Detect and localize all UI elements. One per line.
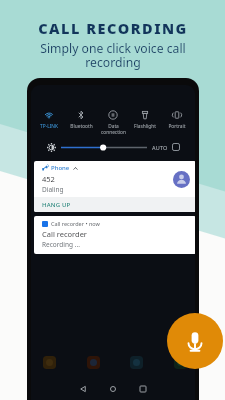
button[interactable]: Flashlight <box>129 110 161 130</box>
button[interactable]: Bluetooth <box>65 110 97 130</box>
button[interactable]: Call recorder • now <box>34 216 195 254</box>
staticText: Dialing <box>42 185 64 194</box>
staticText: Recording ... <box>42 240 80 249</box>
staticText: AUTO <box>152 144 168 151</box>
button[interactable]: Portrait <box>161 110 193 130</box>
button[interactable]: App <box>87 356 100 369</box>
button[interactable]: Phone <box>34 161 195 212</box>
button[interactable]: App <box>130 356 143 369</box>
staticText: Call recorder • now <box>51 220 100 227</box>
staticText: TP-LINK <box>40 123 58 130</box>
staticText: Bluetooth <box>70 123 93 130</box>
button[interactable]: Auto brightness <box>172 143 180 151</box>
button[interactable]: Recents <box>135 381 151 397</box>
button[interactable]: HANG UP <box>34 197 195 212</box>
button[interactable]: Data connection <box>97 110 129 135</box>
button[interactable]: TP-LINK <box>33 110 65 130</box>
button[interactable]: App <box>43 356 56 369</box>
button[interactable]: Back <box>75 381 91 397</box>
staticText: Phone <box>51 164 70 172</box>
staticText: CALL RECORDING <box>38 18 188 38</box>
button[interactable]: Brightness <box>61 143 147 152</box>
staticText: Flashlight <box>134 123 156 130</box>
staticText: Portrait <box>168 123 186 130</box>
button[interactable]: Home <box>105 381 121 397</box>
staticText: 452 <box>42 174 55 184</box>
staticText: Simply one click voice call recording <box>40 40 186 70</box>
button[interactable]: Record call <box>167 313 223 369</box>
staticText: Call recorder <box>42 229 87 239</box>
staticText: HANG UP <box>42 201 71 209</box>
button[interactable]: App <box>174 356 187 369</box>
staticText: Data connection <box>101 123 126 135</box>
